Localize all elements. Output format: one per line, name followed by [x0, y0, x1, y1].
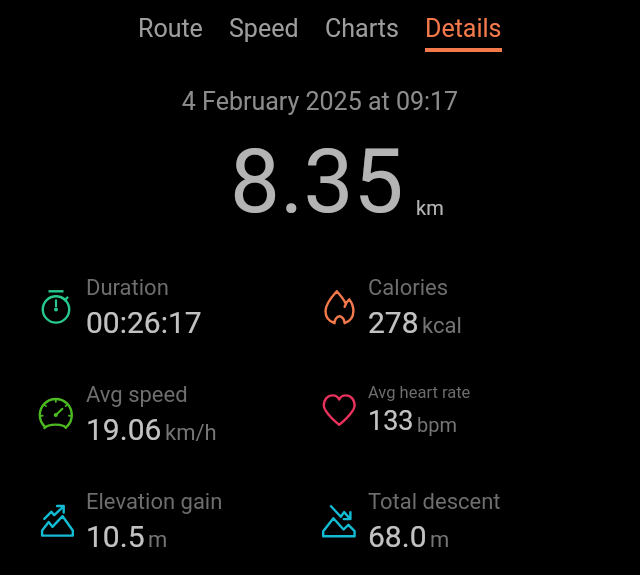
staticText: 278	[368, 305, 419, 340]
staticText: Route	[138, 14, 203, 43]
staticText: 10.5	[86, 519, 145, 554]
other: Average heart rate	[320, 392, 356, 428]
staticText: Elevation gain	[86, 489, 223, 515]
other: Elevation gain	[38, 504, 74, 540]
staticText: Avg heart rate	[368, 383, 471, 402]
staticText: Calories	[368, 275, 449, 301]
button[interactable]: Speed	[216, 0, 312, 48]
staticText: Details	[425, 14, 502, 43]
button[interactable]: Average heart rate	[320, 383, 471, 437]
other: Calories	[320, 290, 356, 326]
other: Total descent	[320, 504, 356, 540]
staticText: 133	[368, 405, 414, 437]
staticText: Avg speed	[86, 382, 188, 408]
button[interactable]: Elevation gain	[38, 489, 223, 554]
button[interactable]: Total descent	[320, 489, 501, 554]
button[interactable]: Details	[412, 0, 515, 52]
staticText: kcal	[422, 313, 462, 339]
staticText: 4 February 2025 at 09:17	[0, 87, 640, 116]
staticText: Total descent	[368, 489, 501, 515]
staticText: km/h	[165, 420, 217, 446]
staticText: 8.35	[230, 129, 404, 233]
other: Average speed	[38, 397, 74, 433]
staticText: Charts	[325, 14, 399, 43]
staticText: Speed	[229, 14, 299, 43]
button[interactable]: Charts	[312, 0, 412, 48]
staticText: m	[148, 527, 168, 553]
staticText: 19.06	[86, 412, 162, 447]
button[interactable]: Calories	[320, 275, 462, 340]
button[interactable]: Duration	[38, 275, 202, 340]
button[interactable]: Average speed	[38, 382, 217, 447]
staticText: 68.0	[368, 519, 427, 554]
button[interactable]: Route	[125, 0, 216, 48]
staticText: km	[416, 196, 444, 219]
staticText: m	[430, 527, 450, 553]
staticText: bpm	[417, 413, 457, 436]
staticText: Duration	[86, 275, 169, 301]
staticText: 00:26:17	[86, 305, 202, 340]
other: Duration	[38, 290, 74, 326]
